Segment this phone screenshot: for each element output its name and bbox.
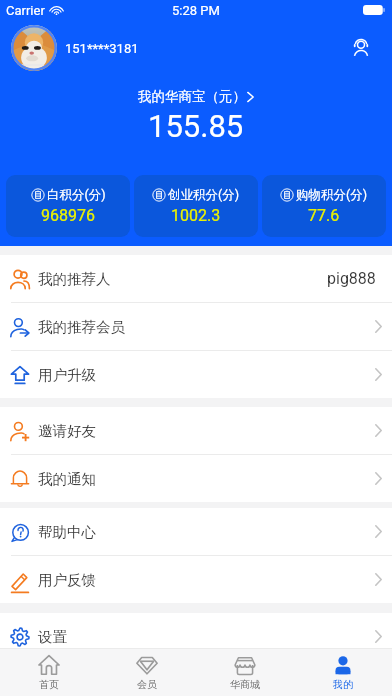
button[interactable]: 我的推荐人: [0, 255, 392, 302]
staticText: 用户反馈: [38, 571, 96, 589]
staticText: 151****3181: [65, 41, 139, 56]
staticText: 邀请好友: [38, 422, 96, 440]
staticText: 创业积分(分): [168, 187, 240, 203]
staticText: 帮助中心: [38, 523, 96, 541]
button[interactable]: 帮助中心: [0, 508, 392, 555]
button[interactable]: 白积分(分): [6, 175, 130, 237]
staticText: 华商城: [230, 678, 260, 691]
staticText: 我的华商宝（元）: [138, 88, 246, 105]
staticText: 968976: [41, 206, 95, 225]
button[interactable]: 我的推荐会员: [0, 303, 392, 350]
staticText: 我的推荐人: [38, 270, 111, 288]
staticText: pig888: [327, 269, 376, 288]
button[interactable]: 设置: [0, 613, 392, 660]
button[interactable]: 会员: [98, 649, 196, 696]
button[interactable]: 购物积分(分): [262, 175, 386, 237]
button[interactable]: 华商城: [196, 649, 294, 696]
button[interactable]: 创业积分(分): [134, 175, 258, 237]
button[interactable]: 用户反馈: [0, 556, 392, 603]
staticText: 购物积分(分): [296, 187, 368, 203]
staticText: 155.85: [148, 108, 244, 144]
button[interactable]: Customer service: [346, 33, 376, 63]
staticText: 77.6: [308, 206, 340, 225]
button[interactable]: 我的: [294, 649, 392, 696]
staticText: 首页: [39, 678, 59, 691]
staticText: 会员: [137, 678, 157, 691]
staticText: Carrier: [6, 3, 45, 18]
staticText: 我的通知: [38, 470, 96, 488]
staticText: 白积分(分): [47, 187, 106, 203]
staticText: 我的: [333, 678, 353, 691]
button[interactable]: 我的通知: [0, 455, 392, 502]
button[interactable]: 邀请好友: [0, 407, 392, 454]
button[interactable]: 我的华商宝（元）: [138, 88, 255, 105]
staticText: 5:28 PM: [172, 3, 220, 18]
staticText: 1002.3: [171, 206, 221, 225]
staticText: 用户升级: [38, 366, 96, 384]
button[interactable]: 首页: [0, 649, 98, 696]
staticText: 我的推荐会员: [38, 318, 125, 336]
button[interactable]: Avatar: [11, 25, 57, 71]
staticText: 设置: [38, 628, 67, 646]
button[interactable]: 用户升级: [0, 351, 392, 398]
